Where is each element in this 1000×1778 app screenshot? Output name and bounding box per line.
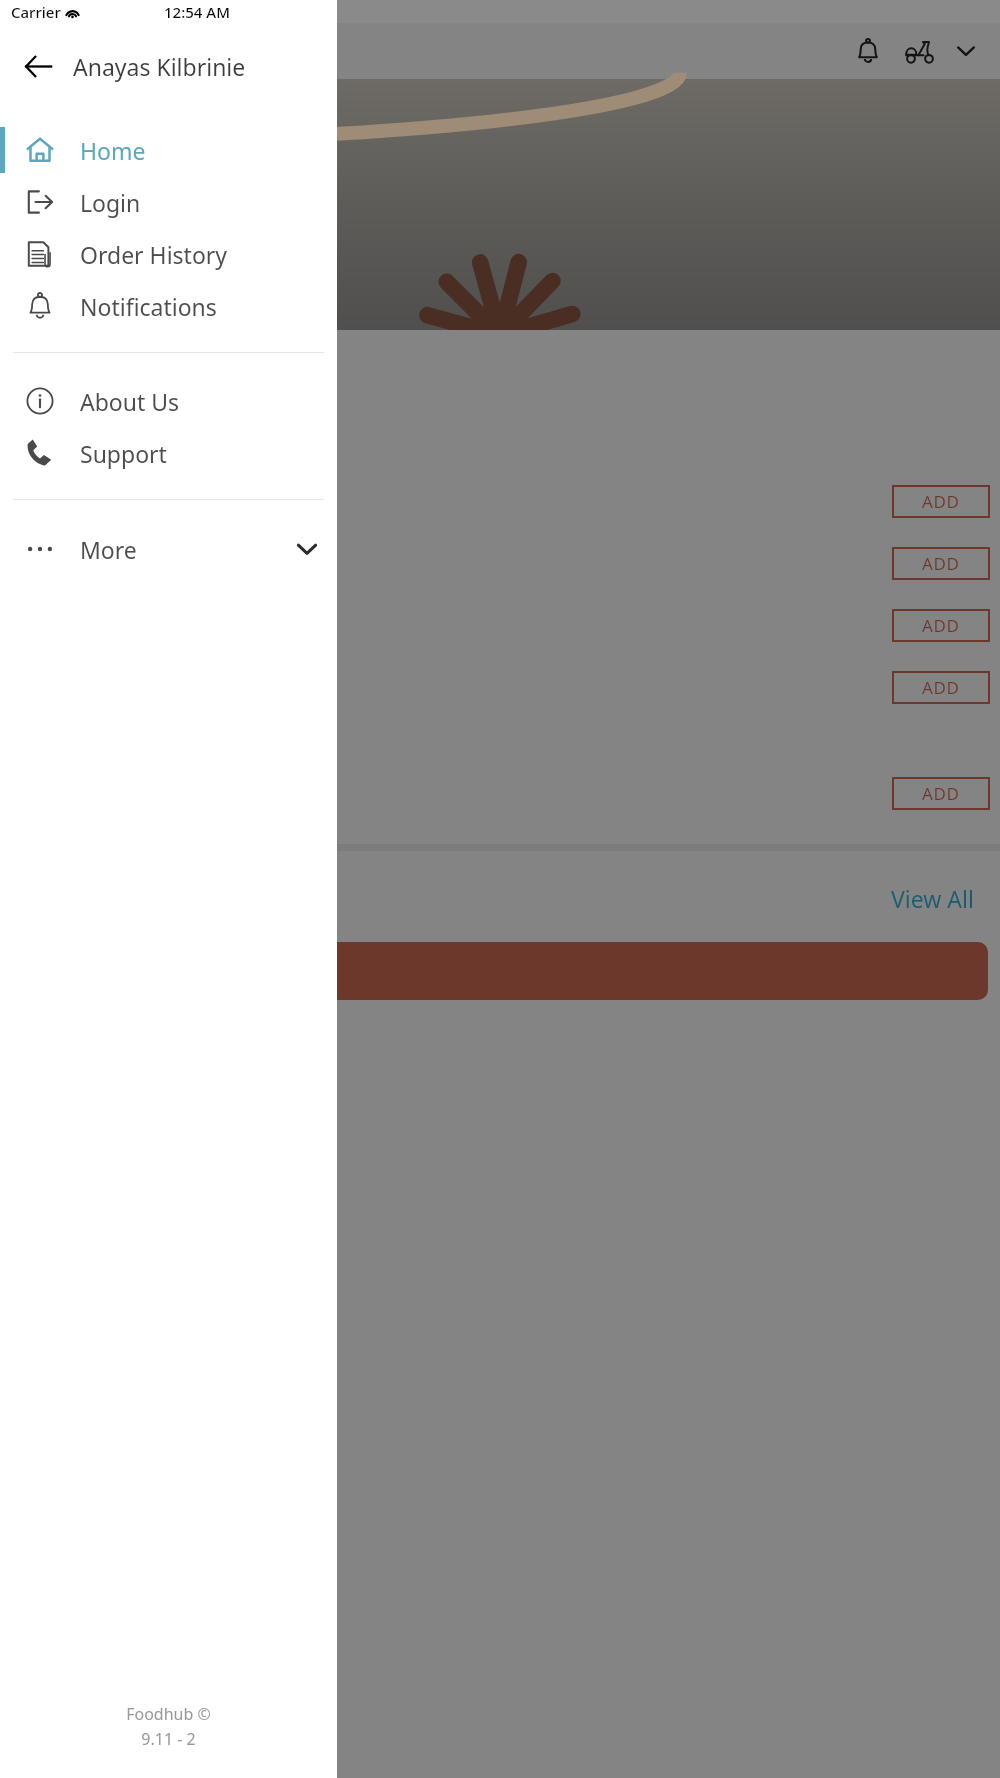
button[interactable]: ADD [892, 609, 990, 642]
staticText: ADD [922, 490, 960, 513]
button[interactable] [12, 942, 988, 1000]
staticText: Carrier [11, 2, 61, 22]
staticText: Support [80, 438, 167, 469]
staticText: ADD [922, 552, 960, 575]
staticText: ADD [922, 614, 960, 637]
staticText: 4.50 [0, 547, 48, 580]
staticText: Login [80, 187, 141, 218]
staticText: 9.11 - 2 [141, 1728, 196, 1750]
button[interactable]: Order History [0, 228, 337, 280]
staticText: 3.25 [0, 485, 48, 518]
staticText: Foodhub © [126, 1703, 211, 1725]
button[interactable]: ADD [892, 485, 990, 518]
button[interactable]: View All [885, 877, 980, 920]
button[interactable]: Expand [946, 31, 986, 71]
button[interactable]: ADD [892, 547, 990, 580]
button[interactable]: More [0, 518, 337, 580]
button[interactable]: ADD [892, 777, 990, 810]
button[interactable]: Login [0, 176, 337, 228]
button[interactable]: Support [0, 427, 337, 479]
staticText: ADD [922, 782, 960, 805]
button[interactable]: Home [0, 124, 337, 176]
staticText: 12:54 AM [164, 2, 230, 22]
staticText: Home [80, 135, 146, 166]
staticText: View All [891, 883, 974, 914]
staticText: More [80, 534, 137, 565]
button[interactable]: About Us [0, 375, 337, 427]
staticText: Anayas Kilbrinie [73, 51, 246, 82]
staticText: ADD [922, 676, 960, 699]
button[interactable]: Notifications [846, 29, 890, 73]
button[interactable]: ADD [892, 671, 990, 704]
button[interactable]: Notifications [0, 280, 337, 332]
staticText: Notifications [80, 291, 217, 322]
staticText: About Us [80, 386, 180, 417]
button[interactable]: Delivery [898, 29, 942, 73]
staticText: Order History [80, 239, 228, 270]
button[interactable]: Back [12, 40, 64, 92]
